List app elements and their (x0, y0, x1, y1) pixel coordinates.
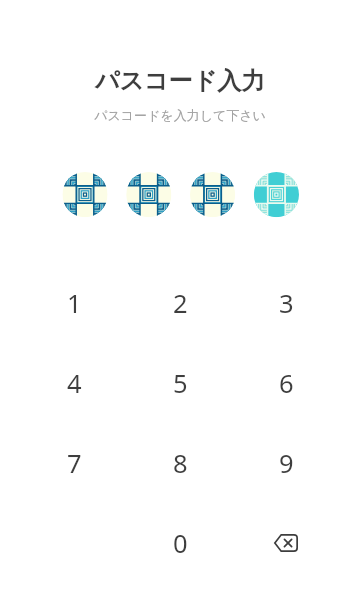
button[interactable]: 4 (21, 343, 127, 423)
staticText: 1 (67, 286, 82, 321)
staticText: 8 (173, 446, 188, 481)
staticText: パスコード入力 (0, 66, 360, 96)
button[interactable]: 5 (127, 343, 233, 423)
button[interactable]: 1 (21, 263, 127, 343)
staticText: 2 (173, 286, 188, 321)
button[interactable]: 2 (127, 263, 233, 343)
button[interactable]: 0 (127, 503, 233, 583)
staticText: 4 (67, 366, 82, 401)
button[interactable]: 9 (233, 423, 339, 503)
staticText: 5 (173, 366, 188, 401)
button[interactable]: 3 (233, 263, 339, 343)
button[interactable]: 8 (127, 423, 233, 503)
staticText: 9 (279, 446, 294, 481)
button[interactable]: 7 (21, 423, 127, 503)
staticText: 7 (67, 446, 82, 481)
button[interactable]: 6 (233, 343, 339, 423)
staticText: 3 (279, 286, 294, 321)
button[interactable]: Backspace (233, 503, 339, 583)
staticText: 6 (279, 366, 294, 401)
staticText: 0 (173, 526, 188, 561)
staticText: パスコードを入力して下さい (0, 107, 360, 123)
